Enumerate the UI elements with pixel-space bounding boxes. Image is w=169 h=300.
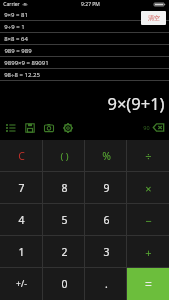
- staticText: 9×9 = 81: [4, 11, 28, 19]
- staticText: 98÷8 = 12.25: [4, 71, 40, 79]
- button[interactable]: ÷: [127, 140, 169, 172]
- button[interactable]: ( ): [43, 140, 85, 172]
- button[interactable]: 0: [43, 268, 85, 300]
- button[interactable]: 5: [43, 204, 85, 236]
- button[interactable]: =: [127, 268, 169, 300]
- staticText: 8: [61, 181, 68, 195]
- button[interactable]: 清空: [141, 11, 166, 25]
- staticText: C: [18, 149, 25, 163]
- button[interactable]: 8: [43, 172, 85, 204]
- button[interactable]: 98÷8 = 12.25: [0, 69, 169, 81]
- button[interactable]: +/-: [0, 268, 43, 300]
- button[interactable]: 2: [43, 236, 85, 268]
- staticText: ( ): [60, 150, 69, 163]
- button[interactable]: 9÷9 = 1: [0, 21, 169, 33]
- staticText: %: [102, 149, 111, 163]
- staticText: 989 = 989: [4, 47, 32, 55]
- button[interactable]: +: [127, 236, 169, 268]
- staticText: 90: [143, 124, 150, 131]
- staticText: 6: [103, 213, 110, 227]
- staticText: 9:27 PM: [81, 1, 100, 8]
- staticText: 0: [61, 277, 68, 291]
- staticText: 4: [18, 213, 25, 227]
- staticText: 9÷9 = 1: [4, 23, 25, 31]
- staticText: 清空: [148, 14, 160, 22]
- button[interactable]: 9: [85, 172, 127, 204]
- button[interactable]: 7: [0, 172, 43, 204]
- staticText: 3: [103, 245, 110, 259]
- button[interactable]: −: [127, 204, 169, 236]
- button[interactable]: 4: [0, 204, 43, 236]
- button[interactable]: 3: [85, 236, 127, 268]
- staticText: 9899×9 = 89091: [4, 59, 49, 67]
- button[interactable]: Settings: [63, 123, 73, 133]
- button[interactable]: ×: [127, 172, 169, 204]
- staticText: =: [145, 276, 152, 292]
- staticText: +/-: [16, 278, 27, 290]
- button[interactable]: Backspace: [153, 123, 164, 132]
- staticText: 1: [18, 245, 25, 259]
- button[interactable]: 1: [0, 236, 43, 268]
- staticText: 9: [103, 181, 110, 195]
- staticText: −: [145, 213, 152, 228]
- button[interactable]: 8×8 = 64: [0, 33, 169, 45]
- button[interactable]: 9×9 = 81: [0, 9, 169, 21]
- staticText: 8×8 = 64: [4, 35, 28, 43]
- button[interactable]: Camera: [44, 123, 54, 133]
- staticText: 7: [18, 181, 25, 195]
- button[interactable]: Save: [25, 123, 35, 133]
- staticText: ×: [145, 181, 152, 196]
- button[interactable]: History: [6, 123, 16, 133]
- staticText: Carrier: [3, 1, 20, 8]
- staticText: ÷: [145, 149, 152, 164]
- staticText: 9×(9+1): [107, 92, 165, 114]
- staticText: 5: [61, 213, 68, 227]
- button[interactable]: .: [85, 268, 127, 300]
- button[interactable]: 989 = 989: [0, 45, 169, 57]
- button[interactable]: C: [0, 140, 43, 172]
- button[interactable]: %: [85, 140, 127, 172]
- button[interactable]: 6: [85, 204, 127, 236]
- staticText: +: [145, 245, 152, 260]
- staticText: 2: [61, 245, 68, 259]
- button[interactable]: 9899×9 = 89091: [0, 57, 169, 69]
- staticText: .: [105, 277, 108, 291]
